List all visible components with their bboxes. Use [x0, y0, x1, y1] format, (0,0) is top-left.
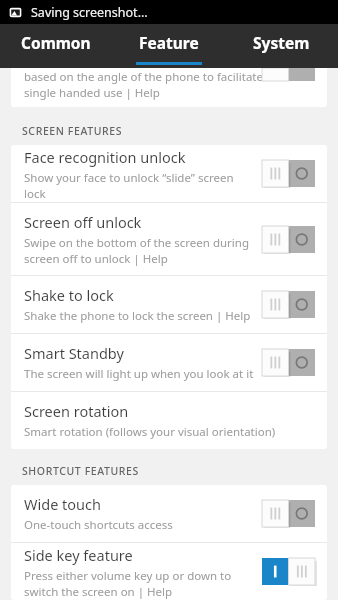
staticText: Shake to lock [24, 285, 114, 305]
button[interactable]: Smart Standby [11, 334, 327, 391]
button[interactable]: Common [0, 24, 112, 68]
button[interactable]: Toggle, on [262, 558, 315, 585]
staticText: Screen off unlock [24, 212, 142, 232]
staticText: SHORTCUT FEATURES [22, 464, 139, 478]
staticText: Show your face to unlock “slide” screen … [24, 170, 256, 201]
staticText: Smart rotation (follows your visual orie… [24, 424, 276, 440]
button[interactable]: Toggle, off [262, 349, 315, 376]
staticText: Screen rotation [24, 401, 129, 421]
button[interactable]: Side key feature [11, 543, 327, 600]
button[interactable]: Screen off unlock [11, 203, 327, 275]
staticText: SCREEN FEATURES [22, 124, 123, 138]
staticText: One-touch shortcuts access [24, 517, 173, 533]
staticText: The screen will light up when you look a… [24, 366, 254, 382]
button[interactable]: Feature [112, 24, 225, 68]
button[interactable]: Toggle, off [262, 226, 315, 253]
staticText: Side key feature [24, 545, 133, 565]
staticText: Saving screenshot… [31, 4, 148, 21]
staticText: Common [21, 32, 91, 53]
staticText: Face recognition unlock [24, 147, 186, 167]
staticText: Press either volume key up or down to sw… [24, 568, 232, 599]
staticText: Feature [139, 32, 199, 53]
staticText: Wide touch [24, 494, 101, 514]
button[interactable]: Face recognition unlock [11, 145, 327, 202]
staticText: single handed use | Help [24, 85, 160, 101]
button[interactable]: Toggle, off [262, 291, 315, 318]
button[interactable]: Toggle, off [262, 68, 315, 81]
button[interactable]: based on the angle of the phone to facil… [11, 68, 327, 107]
button[interactable]: Shake to lock [11, 276, 327, 333]
other: Screenshot [9, 6, 22, 19]
staticText: Shake the phone to lock the screen | Hel… [24, 308, 251, 324]
button[interactable]: Screen rotation [11, 392, 327, 449]
button[interactable]: Toggle, off [262, 500, 315, 527]
staticText: Swipe on the bottom of the screen during… [24, 235, 250, 266]
staticText: System [253, 32, 310, 53]
staticText: based on the angle of the phone to facil… [24, 69, 263, 85]
button[interactable]: Wide touch [11, 485, 327, 542]
button[interactable]: Toggle, off [262, 160, 315, 187]
staticText: Smart Standby [24, 343, 124, 363]
button[interactable]: System [225, 24, 338, 68]
